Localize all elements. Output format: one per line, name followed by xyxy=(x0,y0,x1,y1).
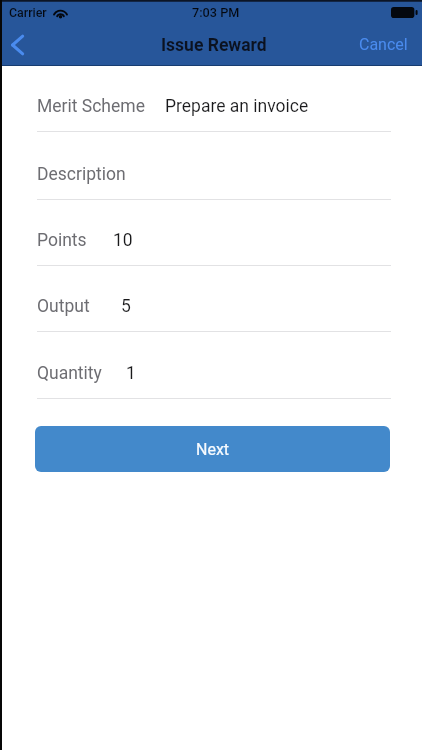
staticText: Next xyxy=(196,440,230,459)
button[interactable]: Cancel xyxy=(345,23,422,66)
staticText: Output xyxy=(37,296,90,317)
button[interactable]: Output xyxy=(37,266,391,332)
button[interactable]: Back xyxy=(0,23,38,66)
button[interactable]: Description xyxy=(37,132,391,200)
button[interactable]: Merit Scheme xyxy=(37,66,391,132)
button[interactable]: Points xyxy=(37,200,391,266)
staticText: 7:03 PM xyxy=(192,5,240,20)
staticText: 5 xyxy=(121,296,131,317)
button[interactable]: Quantity xyxy=(37,332,391,399)
button[interactable]: Next xyxy=(35,426,390,472)
staticText: Merit Scheme xyxy=(37,96,145,117)
staticText: 1 xyxy=(126,363,136,384)
staticText: Quantity xyxy=(37,363,102,384)
staticText: Prepare an invoice xyxy=(165,96,309,117)
staticText: Points xyxy=(37,230,87,251)
staticText: 10 xyxy=(113,230,133,251)
staticText: Description xyxy=(37,164,126,185)
staticText: Carrier xyxy=(9,5,47,20)
staticText: Cancel xyxy=(359,35,408,54)
staticText: Issue Reward xyxy=(161,35,267,56)
